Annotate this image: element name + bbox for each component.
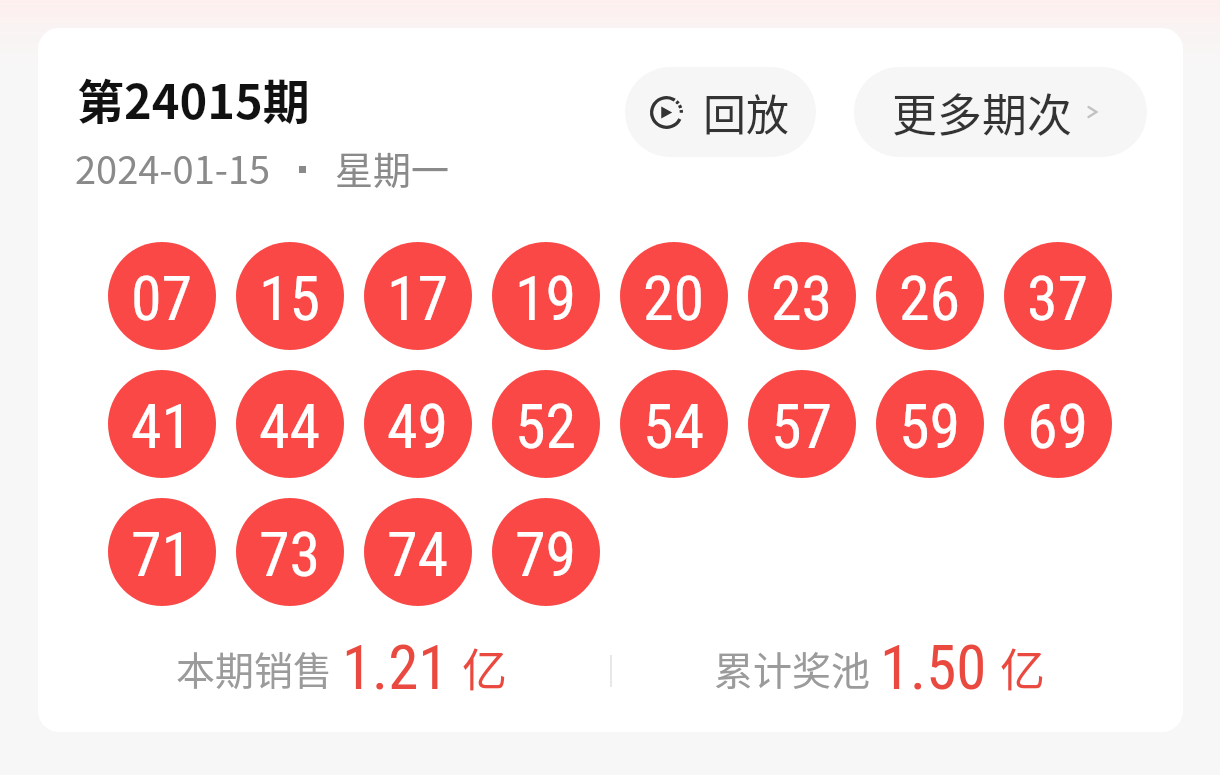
- staticText: 37: [1027, 262, 1089, 335]
- staticText: 20: [643, 262, 705, 335]
- staticText: 07: [131, 262, 193, 335]
- staticText: 69: [1027, 390, 1089, 463]
- other: 回放: [650, 96, 683, 129]
- staticText: 54: [643, 390, 705, 463]
- staticText: 1.21: [342, 632, 449, 703]
- staticText: 累计奖池: [714, 640, 871, 696]
- staticText: 59: [899, 390, 961, 463]
- staticText: 第24015期: [77, 64, 310, 132]
- staticText: 亿: [1000, 635, 1046, 700]
- staticText: 17: [387, 262, 449, 335]
- button[interactable]: 回放: [625, 67, 816, 157]
- staticText: 1.50: [880, 632, 987, 703]
- staticText: 44: [259, 390, 321, 463]
- staticText: 26: [899, 262, 961, 335]
- staticText: 15: [259, 262, 321, 335]
- staticText: 19: [515, 262, 577, 335]
- staticText: 52: [515, 390, 577, 463]
- staticText: 23: [771, 262, 833, 335]
- staticText: 2024-01-15: [75, 140, 271, 195]
- staticText: 49: [387, 390, 449, 463]
- staticText: 74: [387, 518, 449, 591]
- staticText: 71: [131, 518, 193, 591]
- staticText: 本期销售: [176, 640, 333, 696]
- staticText: 星期一: [335, 140, 450, 195]
- staticText: 79: [515, 518, 577, 591]
- staticText: 57: [771, 390, 833, 463]
- button[interactable]: 更多期次: [854, 67, 1147, 157]
- staticText: 73: [259, 518, 321, 591]
- staticText: 亿: [462, 635, 508, 700]
- staticText: 更多期次: [892, 80, 1073, 145]
- staticText: 41: [131, 390, 193, 463]
- staticText: 回放: [703, 81, 789, 143]
